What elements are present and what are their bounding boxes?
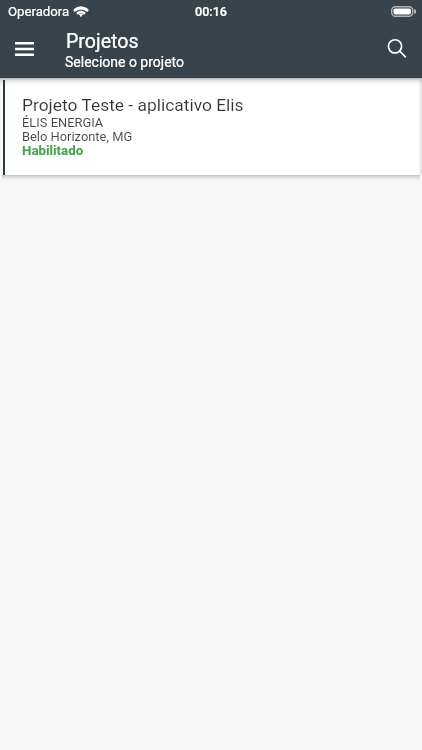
staticText: 00:16 — [195, 4, 227, 19]
button[interactable]: Menu — [5, 30, 43, 68]
staticText: Selecione o projeto — [65, 54, 185, 70]
button[interactable]: Search — [376, 28, 418, 70]
staticText: ÉLIS ENERGIA — [22, 115, 104, 130]
staticText: Projetos — [66, 30, 139, 53]
staticText: Habilitado — [22, 143, 84, 159]
staticText: Belo Horizonte, MG — [22, 129, 133, 144]
staticText: Projeto Teste - aplicativo Elis — [22, 95, 244, 115]
staticText: Operadora — [8, 4, 70, 19]
button[interactable]: Projeto Teste - aplicativo Elis — [3, 80, 419, 175]
